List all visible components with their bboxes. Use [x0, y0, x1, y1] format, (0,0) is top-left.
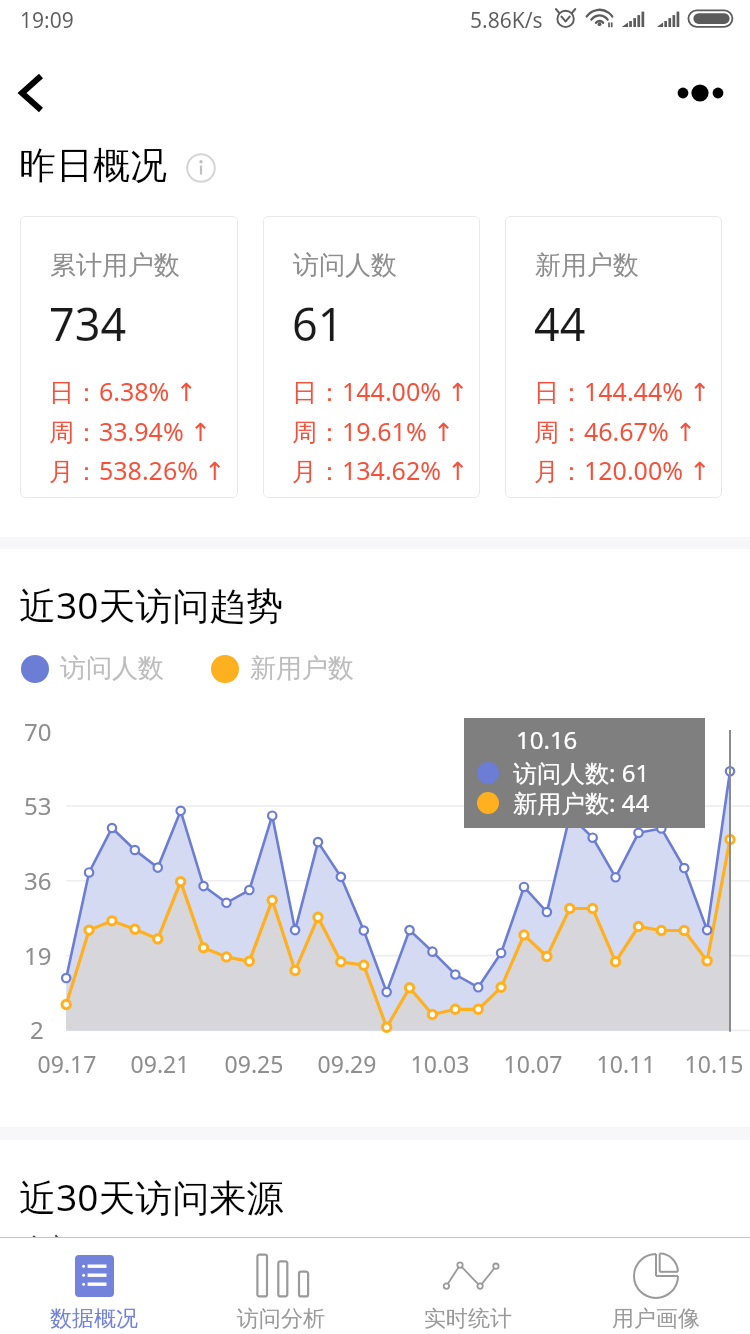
- staticText: 10.15: [678, 1048, 750, 1079]
- staticText: 36: [24, 864, 52, 897]
- staticText: 09.25: [218, 1048, 290, 1079]
- staticText: 访问人数: [293, 249, 397, 282]
- button[interactable]: 实时统计: [374, 1237, 562, 1334]
- button[interactable]: More options: [662, 55, 734, 113]
- staticText: 访问人数: [60, 652, 164, 685]
- staticText: 09.29: [311, 1048, 383, 1079]
- staticText: 周：19.61% ↑: [292, 414, 455, 448]
- button[interactable]: 数据概况: [0, 1237, 187, 1334]
- staticText: 日：144.00% ↑: [292, 374, 469, 408]
- staticText: 10.16: [516, 723, 578, 756]
- button[interactable]: Info: [186, 153, 216, 183]
- staticText: 10.03: [404, 1048, 476, 1079]
- staticText: 10.07: [497, 1048, 569, 1079]
- button[interactable]: 访问人数: [263, 216, 480, 498]
- staticText: 2: [30, 1013, 44, 1046]
- staticText: 09.17: [31, 1048, 103, 1079]
- staticText: 09.21: [124, 1048, 196, 1079]
- staticText: 5.86K/s: [470, 6, 543, 35]
- button[interactable]: 访问分析: [187, 1237, 374, 1334]
- staticText: 访问人数: 61: [513, 756, 650, 789]
- staticText: 周：46.67% ↑: [534, 414, 697, 448]
- staticText: 数据概况: [50, 1305, 138, 1333]
- staticText: 新用户数: [250, 652, 354, 685]
- staticText: 昨日概况: [19, 142, 167, 189]
- button[interactable]: 用户画像: [562, 1237, 750, 1334]
- staticText: 新用户数: 44: [513, 786, 650, 819]
- button[interactable]: Back: [4, 55, 62, 113]
- staticText: 月：120.00% ↑: [534, 453, 711, 487]
- staticText: 实时统计: [424, 1305, 512, 1333]
- staticText: 新用户数: [535, 249, 639, 282]
- staticText: 全部: [20, 1231, 78, 1268]
- staticText: 访问分析: [237, 1305, 325, 1333]
- staticText: 累计用户数: [50, 249, 180, 282]
- staticText: 日：144.44% ↑: [534, 374, 711, 408]
- staticText: 61: [292, 293, 344, 354]
- staticText: 53: [24, 789, 52, 822]
- staticText: 19: [24, 939, 52, 972]
- staticText: 用户画像: [612, 1305, 700, 1333]
- staticText: 周：33.94% ↑: [49, 414, 212, 448]
- staticText: 月：538.26% ↑: [49, 453, 226, 487]
- staticText: 日：6.38% ↑: [49, 374, 197, 408]
- button[interactable]: 新用户数: [505, 216, 722, 498]
- staticText: 19:09: [20, 6, 74, 35]
- staticText: 10.11: [590, 1048, 662, 1079]
- staticText: 734: [49, 293, 127, 354]
- staticText: 70: [24, 715, 52, 748]
- staticText: 44: [534, 293, 586, 354]
- staticText: 近30天访问趋势: [19, 579, 284, 630]
- button[interactable]: 累计用户数: [20, 216, 238, 498]
- staticText: 月：134.62% ↑: [292, 453, 469, 487]
- staticText: 近30天访问来源: [19, 1171, 284, 1222]
